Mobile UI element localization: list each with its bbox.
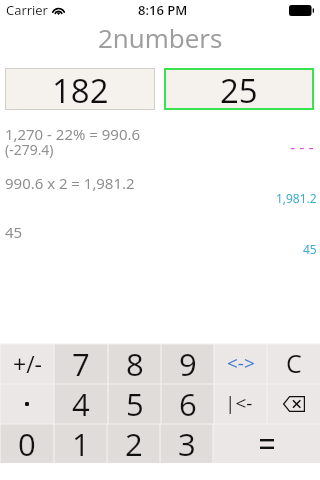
staticText: 45 (5, 222, 23, 242)
staticText: 7 (72, 343, 90, 383)
staticText: 8 (126, 343, 144, 383)
staticText: 45 (303, 241, 317, 257)
button[interactable]: Delete (267, 384, 320, 424)
button[interactable]: 990.6 x 2 = 1,981.2 (0, 171, 320, 220)
staticText: 9 (179, 343, 197, 383)
staticText: 182 (52, 68, 109, 110)
staticText: 1 (72, 423, 90, 462)
staticText: Carrier (6, 1, 48, 19)
staticText: 4 (72, 383, 90, 423)
staticText: 8:16 PM (138, 1, 188, 19)
staticText: 2numbers (98, 20, 223, 54)
staticText: |<- (225, 390, 253, 416)
button[interactable]: 5 (108, 384, 161, 424)
staticText: <-> (227, 350, 255, 376)
button[interactable]: 45 (0, 220, 320, 269)
staticText: 1,270 - 22% = 990.6 (5, 124, 140, 144)
other: Delete (283, 396, 305, 412)
button[interactable]: |<- (214, 384, 267, 424)
button[interactable]: <-> (214, 344, 267, 384)
button[interactable]: +/- (0, 344, 54, 384)
button[interactable]: 2 (107, 424, 160, 463)
button[interactable]: 0 (0, 424, 54, 463)
staticText: 25 (220, 68, 258, 110)
button[interactable]: C (267, 344, 320, 384)
staticText: 6 (179, 383, 197, 423)
button[interactable] (213, 424, 320, 463)
button[interactable]: 4 (54, 384, 108, 424)
staticText: 1,981.2 (276, 190, 317, 206)
staticText: +/- (13, 348, 42, 379)
staticText: - - - (290, 136, 314, 158)
staticText: C (286, 346, 302, 380)
staticText: 2 (125, 423, 143, 462)
button[interactable]: 1,270 - 22% = 990.6 (0, 122, 320, 171)
button[interactable]: 6 (161, 384, 214, 424)
button[interactable]: 7 (54, 344, 108, 384)
staticText: 0 (18, 423, 36, 462)
staticText: 3 (178, 423, 196, 462)
staticText: 5 (126, 383, 144, 423)
button[interactable] (0, 384, 54, 424)
button[interactable]: 9 (161, 344, 214, 384)
staticText: (-279.4) (5, 140, 54, 159)
staticText: 990.6 x 2 = 1,981.2 (5, 173, 135, 193)
button[interactable]: 8 (108, 344, 161, 384)
button[interactable]: 25 (164, 68, 314, 110)
button[interactable]: 1 (54, 424, 107, 463)
button[interactable]: 182 (5, 68, 155, 110)
button[interactable]: 3 (160, 424, 213, 463)
